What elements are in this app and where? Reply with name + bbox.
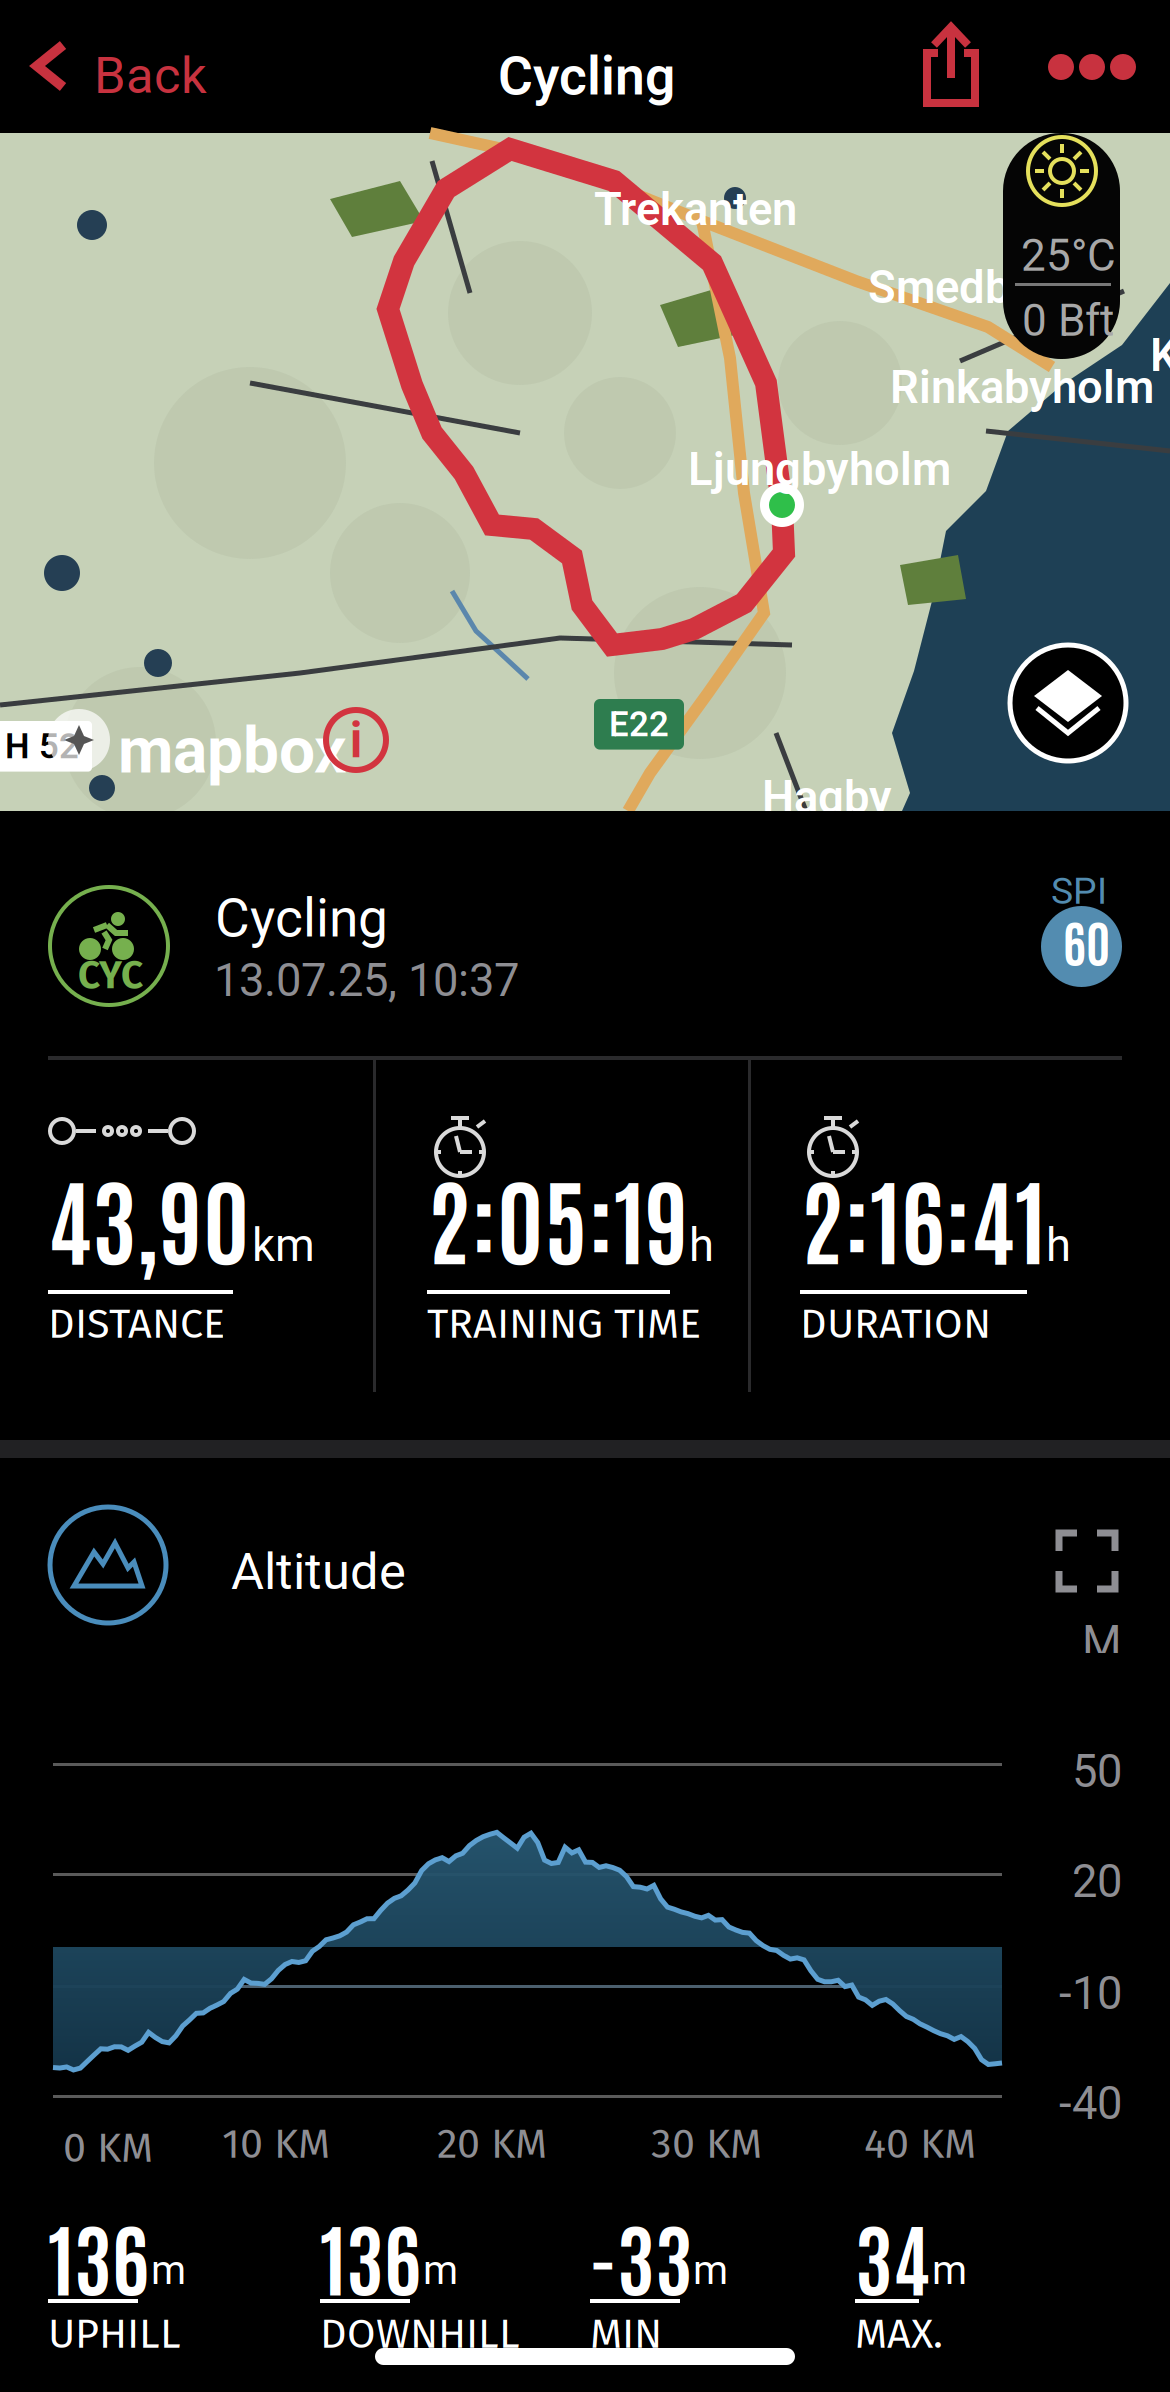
staticText: Hagby (762, 771, 892, 824)
staticText: -33 (590, 2203, 693, 2306)
staticText: K (1150, 329, 1170, 382)
staticText: 50 (1072, 1745, 1122, 1798)
staticText: 30 KM (651, 2119, 762, 2169)
staticText: 2:16:41 (800, 1155, 1046, 1277)
staticText: 25°C (1021, 230, 1116, 282)
staticText: 13.07.25, 10:37 (214, 954, 519, 1007)
staticText: SPI (1051, 869, 1107, 913)
staticText: Cycling (498, 45, 675, 107)
staticText: 0 KM (63, 2123, 153, 2173)
staticText: Ljungbyholm (688, 443, 951, 496)
staticText: 10 KM (222, 2119, 330, 2169)
staticText: DISTANCE (48, 1299, 225, 1349)
staticText: 60 (1063, 909, 1110, 973)
staticText: 136 (320, 2203, 421, 2306)
button[interactable] (890, 0, 1014, 133)
staticText: m (693, 2247, 728, 2294)
staticText: DOWNHILL (320, 2309, 520, 2359)
button[interactable] (1010, 645, 1126, 761)
staticText: 20 (1072, 1855, 1122, 1908)
staticText: E22 (609, 704, 669, 745)
staticText: -10 (1059, 1967, 1122, 2020)
staticText: i (349, 710, 362, 770)
staticText: M (1082, 1616, 1122, 1669)
staticText: UPHILL (48, 2309, 181, 2359)
staticText: Smedby (868, 261, 1033, 314)
staticText: 20 KM (437, 2119, 547, 2169)
staticText: m (423, 2247, 458, 2294)
staticText: MAX. (855, 2309, 943, 2359)
button[interactable] (1032, 1506, 1142, 1616)
staticText: m (932, 2247, 967, 2294)
button[interactable] (1014, 0, 1170, 133)
staticText: Altitude (231, 1542, 406, 1601)
staticText: -40 (1059, 2077, 1122, 2130)
staticText: H 52 (5, 726, 79, 767)
staticText: Trekanten (594, 183, 797, 236)
button[interactable]: Back (0, 0, 230, 133)
staticText: 34 (855, 2203, 930, 2306)
staticText: Back (94, 46, 207, 105)
staticText: 43,90 (48, 1155, 250, 1277)
staticText: km (252, 1219, 315, 1272)
staticText: 2:05:19 (427, 1155, 689, 1277)
staticText: h (1046, 1219, 1071, 1272)
staticText: mapbox (118, 713, 347, 788)
staticText: MIN (590, 2309, 662, 2359)
staticText: h (689, 1219, 714, 1272)
staticText: TRAINING TIME (427, 1299, 701, 1349)
staticText: CYC (78, 952, 143, 998)
staticText: 40 KM (864, 2119, 976, 2169)
staticText: 0 Bft (1022, 295, 1114, 347)
staticText: Cycling (215, 887, 388, 949)
staticText: DURATION (800, 1299, 991, 1349)
staticText: 136 (48, 2203, 149, 2306)
staticText: Rinkabyholm (890, 361, 1154, 414)
staticText: m (151, 2247, 186, 2294)
